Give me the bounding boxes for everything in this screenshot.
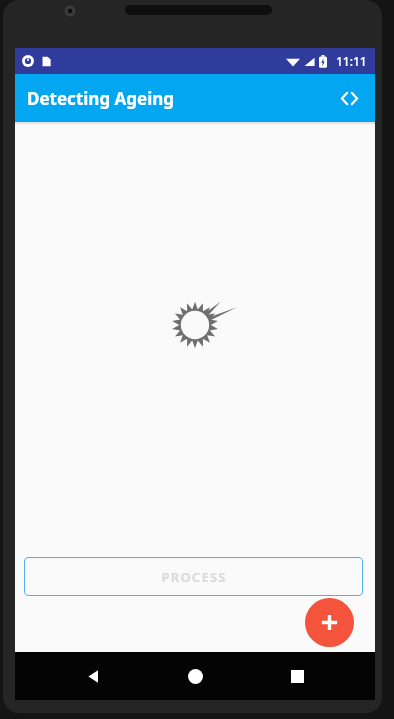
staticText: PROCESS [161,568,227,586]
button[interactable]: Source code [328,77,370,119]
staticText: 11:11 [336,53,367,69]
staticText: Detecting Ageing [27,87,175,110]
button[interactable]: Recent apps [273,652,321,700]
button[interactable]: Back [69,652,117,700]
button[interactable]: Home [171,652,219,700]
button[interactable]: PROCESS [24,557,363,596]
button[interactable]: Add photo [305,598,354,647]
